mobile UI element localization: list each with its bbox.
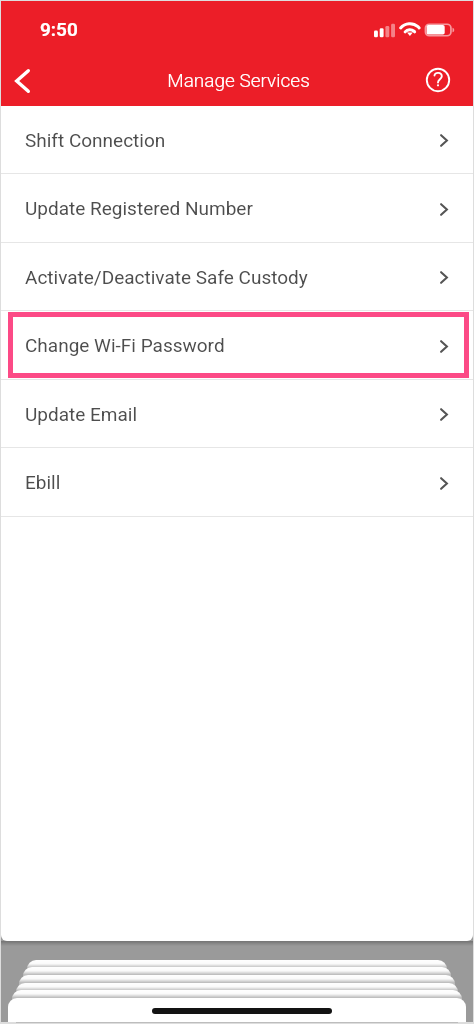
button[interactable]: Activate/Deactivate Safe Custody	[1, 243, 473, 310]
staticText: Shift Connection	[25, 129, 166, 151]
staticText: Manage Services	[167, 69, 310, 91]
staticText: Activate/Deactivate Safe Custody	[25, 266, 308, 288]
staticText: 9:50	[40, 18, 78, 40]
button[interactable]: Help	[425, 52, 473, 106]
button[interactable]: Update Email	[1, 380, 473, 447]
button[interactable]: Shift Connection	[1, 106, 473, 173]
button[interactable]: Ebill	[1, 448, 473, 516]
staticText: Ebill	[25, 471, 61, 493]
button[interactable]: Update Registered Number	[1, 174, 473, 242]
staticText: Update Email	[25, 403, 138, 425]
staticText: Change Wi-Fi Password	[25, 334, 225, 356]
button[interactable]: Back	[1, 52, 47, 106]
button[interactable]: Change Wi-Fi Password	[1, 311, 473, 379]
staticText: Update Registered Number	[25, 197, 253, 219]
